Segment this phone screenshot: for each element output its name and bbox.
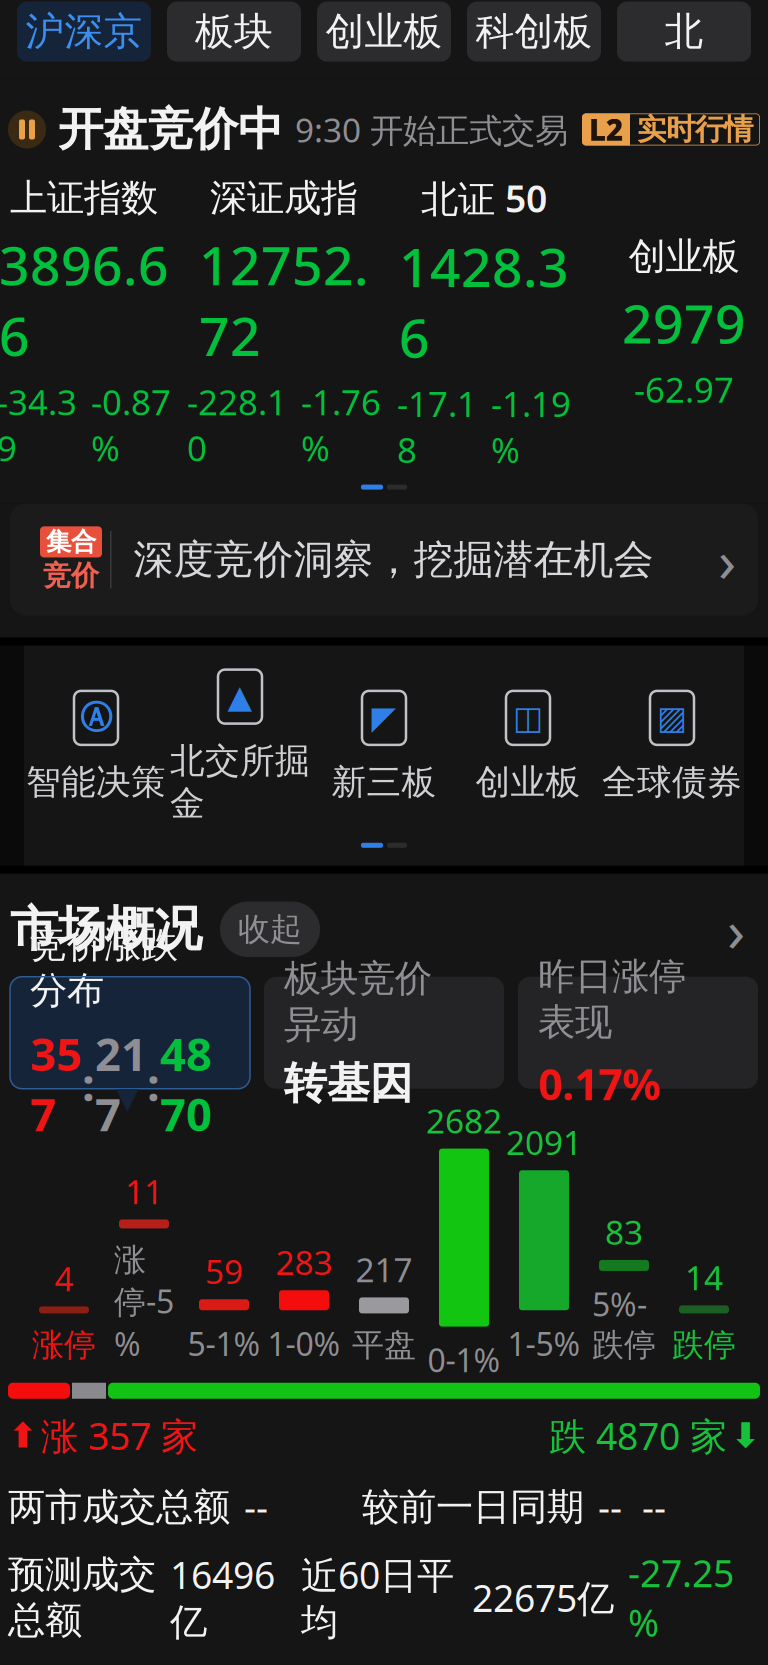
staticText: 转基因: [284, 1057, 413, 1110]
staticText: 实时行情: [637, 111, 753, 147]
staticText: 59: [205, 1249, 243, 1293]
staticText: 创业板: [628, 234, 739, 279]
staticText: 5-1%: [187, 1322, 260, 1365]
staticText: -1.19%: [491, 380, 571, 473]
button[interactable]: 上证指数: [0, 175, 184, 471]
button[interactable]: ▨: [600, 689, 744, 803]
staticText: Ⓐ: [80, 698, 112, 737]
staticText: 跌 4870 家: [549, 1411, 727, 1460]
staticText: 北证 50: [421, 173, 547, 223]
staticText: 14: [685, 1255, 723, 1299]
staticText: 昨日涨停表现: [538, 953, 686, 1045]
staticText: ▲: [227, 678, 252, 715]
staticText: 竞价: [43, 558, 99, 593]
button[interactable]: 收起: [220, 902, 320, 957]
button[interactable]: 北: [617, 2, 751, 62]
staticText: -228.10: [187, 379, 287, 471]
staticText: -- --: [598, 1482, 666, 1532]
staticText: ▨: [657, 700, 687, 736]
staticText: ◫: [513, 700, 543, 736]
staticText: -62.97: [634, 366, 734, 412]
button[interactable]: 创业板: [317, 2, 451, 62]
staticText: 创业板: [475, 761, 580, 803]
staticText: ⬇: [731, 1416, 760, 1455]
staticText: 83: [605, 1210, 643, 1254]
staticText: 沪深京: [25, 8, 142, 55]
staticText: 4: [54, 1256, 73, 1300]
staticText: 竞价涨跌分布: [30, 922, 178, 1013]
staticText: 创业板: [325, 8, 442, 55]
staticText: 217: [355, 1247, 412, 1291]
staticText: 平盘: [352, 1325, 416, 1365]
button[interactable]: 竞价涨跌分布: [10, 977, 250, 1089]
staticText: --: [244, 1482, 268, 1532]
staticText: 全球债券: [602, 761, 742, 803]
staticText: 涨停-5%: [114, 1240, 174, 1365]
staticText: 217: [95, 1023, 147, 1144]
staticText: 2682: [426, 1098, 502, 1143]
staticText: ⬆: [8, 1416, 37, 1455]
button[interactable]: 昨日涨停表现: [518, 977, 758, 1089]
staticText: 5%-跌停: [592, 1283, 656, 1365]
staticText: 北交所掘金: [170, 740, 310, 825]
staticText: 跌停: [672, 1325, 736, 1365]
staticText: 22675亿: [472, 1573, 614, 1622]
staticText: 涨停: [32, 1325, 96, 1365]
staticText: 北: [664, 8, 703, 55]
staticText: 板块竞价异动: [284, 956, 432, 1047]
staticText: L2: [589, 110, 623, 149]
staticText: 9:30 开始正式交易: [295, 107, 568, 152]
button[interactable]: ◫: [456, 689, 600, 803]
staticText: -27.25%: [628, 1548, 734, 1647]
staticText: 3896.66: [0, 229, 169, 371]
staticText: 科创板: [475, 8, 592, 55]
staticText: -0.87%: [91, 379, 171, 471]
staticText: ›: [718, 521, 736, 599]
button[interactable]: 科创板: [467, 2, 601, 62]
staticText: 近60日平均: [301, 1550, 454, 1645]
button[interactable]: 更多市场概况: [714, 907, 758, 951]
staticText: 开盘竞价中: [58, 102, 283, 157]
staticText: :: [147, 1053, 160, 1114]
staticText: 智能决策: [26, 761, 166, 803]
staticText: 较前一日同期: [362, 1484, 584, 1530]
staticText: 4870: [160, 1023, 212, 1144]
staticText: ◤: [371, 700, 396, 736]
staticText: 1-5%: [507, 1322, 580, 1365]
staticText: 上证指数: [10, 175, 158, 221]
staticText: :: [82, 1053, 95, 1114]
staticText: 283: [275, 1240, 332, 1284]
staticText: 1428.36: [399, 231, 569, 372]
staticText: 357: [30, 1023, 82, 1144]
staticText: 0.17%: [538, 1055, 660, 1112]
button[interactable]: ▲: [168, 668, 312, 825]
staticText: 12752.72: [199, 229, 369, 371]
staticText: 市场概况: [10, 900, 202, 959]
button[interactable]: 板块: [167, 2, 301, 62]
button[interactable]: 北证 50: [384, 173, 584, 473]
staticText: -1.76%: [301, 379, 381, 471]
staticText: 预测成交总额: [8, 1552, 156, 1643]
button[interactable]: 深证成指: [184, 175, 384, 471]
staticText: 集合: [46, 526, 96, 557]
button[interactable]: 集合: [10, 504, 758, 616]
staticText: 1-0%: [267, 1322, 340, 1365]
button[interactable]: ◤: [312, 689, 456, 803]
button[interactable]: 创业板: [584, 234, 768, 412]
staticText: 两市成交总额: [8, 1484, 230, 1530]
staticText: 11: [125, 1169, 163, 1213]
staticText: 涨 357 家: [41, 1411, 198, 1460]
staticText: 深证成指: [210, 175, 358, 221]
staticText: 深度竞价洞察，挖掘潜在机会: [133, 535, 653, 584]
staticText: 16496亿: [170, 1550, 275, 1645]
staticText: 新三板: [331, 761, 436, 803]
staticText: 0-1%: [427, 1339, 500, 1381]
staticText: 2979: [622, 287, 746, 358]
button[interactable]: 板块竞价异动: [264, 977, 504, 1089]
staticText: ›: [727, 890, 745, 968]
button[interactable]: 沪深京: [17, 2, 151, 62]
staticText: ▼: [116, 1081, 139, 1114]
staticText: 收起: [238, 910, 302, 949]
staticText: -34.39: [0, 379, 77, 471]
button[interactable]: Ⓐ: [24, 689, 168, 803]
